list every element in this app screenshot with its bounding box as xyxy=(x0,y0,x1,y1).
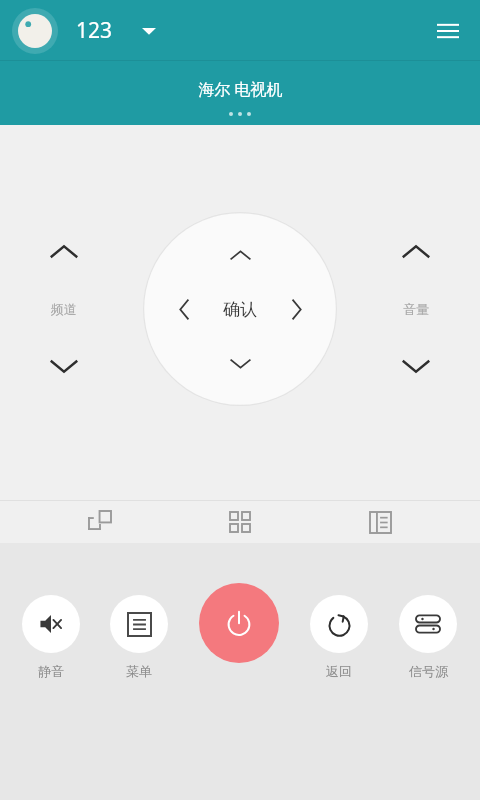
button[interactable]: Mute xyxy=(22,595,80,653)
staticText: 信号源 xyxy=(409,663,448,679)
staticText: 海尔 电视机 xyxy=(198,78,283,100)
button[interactable]: Menu xyxy=(422,5,474,57)
button[interactable]: Select device xyxy=(133,15,165,47)
button[interactable]: Left xyxy=(161,286,207,332)
button[interactable]: Right xyxy=(273,286,319,332)
staticText: 静音 xyxy=(38,663,64,679)
button[interactable]: Volume down xyxy=(388,338,444,394)
button[interactable]: Power xyxy=(199,583,279,663)
staticText: 返回 xyxy=(326,663,352,679)
button[interactable]: Volume up xyxy=(388,224,444,280)
staticText: 菜单 xyxy=(126,663,152,679)
button[interactable]: Channel up xyxy=(36,224,92,280)
button[interactable]: Profile xyxy=(12,8,58,54)
button[interactable]: Menu xyxy=(110,595,168,653)
staticText: 音量 xyxy=(403,301,429,317)
button[interactable]: Channel down xyxy=(36,338,92,394)
button[interactable]: Back xyxy=(310,595,368,653)
button[interactable]: Source xyxy=(399,595,457,653)
button[interactable]: Picture in picture xyxy=(79,501,121,543)
button[interactable]: Apps grid xyxy=(219,501,261,543)
staticText: 123 xyxy=(76,16,113,45)
button[interactable]: Up xyxy=(217,232,263,278)
button[interactable]: Program list xyxy=(359,501,401,543)
button[interactable]: 确认 xyxy=(204,273,276,345)
staticText: 确认 xyxy=(223,299,257,320)
button[interactable]: Down xyxy=(217,340,263,386)
staticText: 频道 xyxy=(51,301,77,317)
